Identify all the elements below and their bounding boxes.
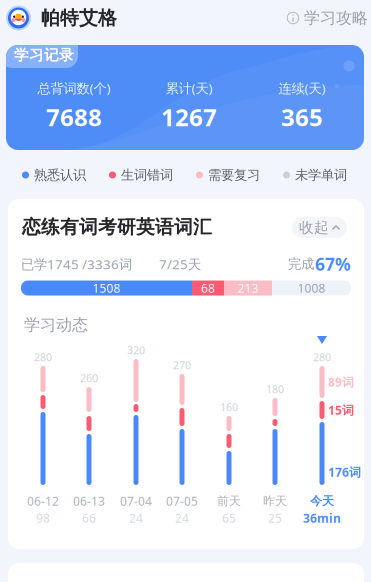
staticText: 67% xyxy=(315,252,351,275)
staticText: 学习动态 xyxy=(24,315,88,335)
staticText: 06-12 xyxy=(27,493,59,509)
button[interactable]: 学习攻略 xyxy=(296,6,368,30)
staticText: 07-05 xyxy=(166,493,198,509)
staticText: 98 xyxy=(36,510,50,526)
staticText: 213 xyxy=(237,280,258,296)
staticText: 270 xyxy=(173,358,191,372)
staticText: 7/25天 xyxy=(159,255,201,273)
staticText: 365 xyxy=(281,101,323,133)
staticText: 15词 xyxy=(328,402,354,418)
staticText: 66 xyxy=(82,510,96,526)
staticText: 36min xyxy=(303,510,341,526)
staticText: 1008 xyxy=(297,280,325,296)
staticText: 260 xyxy=(80,371,98,385)
staticText: 07-04 xyxy=(120,493,152,509)
staticText: 24 xyxy=(129,510,143,526)
staticText: 今天 xyxy=(310,494,334,508)
staticText: 180 xyxy=(266,382,284,396)
staticText: 总背词数(个) xyxy=(37,79,110,97)
staticText: 06-13 xyxy=(73,493,105,509)
staticText: 未学单词 xyxy=(295,167,347,183)
staticText: 68 xyxy=(201,280,215,296)
staticText: 7688 xyxy=(46,101,102,133)
staticText: 280 xyxy=(34,350,52,364)
staticText: 学习攻略 xyxy=(304,8,368,28)
staticText: 需要复习 xyxy=(208,167,260,183)
staticText: 320 xyxy=(127,343,145,357)
button[interactable]: 收起 xyxy=(292,217,347,238)
staticText: 学习记录 xyxy=(14,46,74,64)
staticText: 帕特艾格 xyxy=(41,6,117,29)
staticText: 1508 xyxy=(92,280,120,296)
staticText: 完成 xyxy=(288,256,314,272)
staticText: 280 xyxy=(313,350,331,364)
staticText: 熟悉认识 xyxy=(34,167,86,183)
staticText: 前天 xyxy=(217,494,241,508)
staticText: 收起 xyxy=(299,218,329,236)
staticText: 恋练有词考研英语词汇 xyxy=(22,215,212,238)
staticText: 已学1745 /3336词 xyxy=(21,255,132,273)
staticText: 昨天 xyxy=(263,494,287,508)
staticText: 1267 xyxy=(161,101,217,133)
staticText: 89词 xyxy=(328,374,354,390)
staticText: 生词错词 xyxy=(121,167,173,183)
staticText: 176词 xyxy=(328,464,361,480)
staticText: 连续(天) xyxy=(278,79,325,97)
staticText: 25 xyxy=(268,510,282,526)
staticText: 160 xyxy=(220,400,238,414)
staticText: 65 xyxy=(222,510,236,526)
staticText: 24 xyxy=(175,510,189,526)
staticText: 累计(天) xyxy=(165,79,212,97)
